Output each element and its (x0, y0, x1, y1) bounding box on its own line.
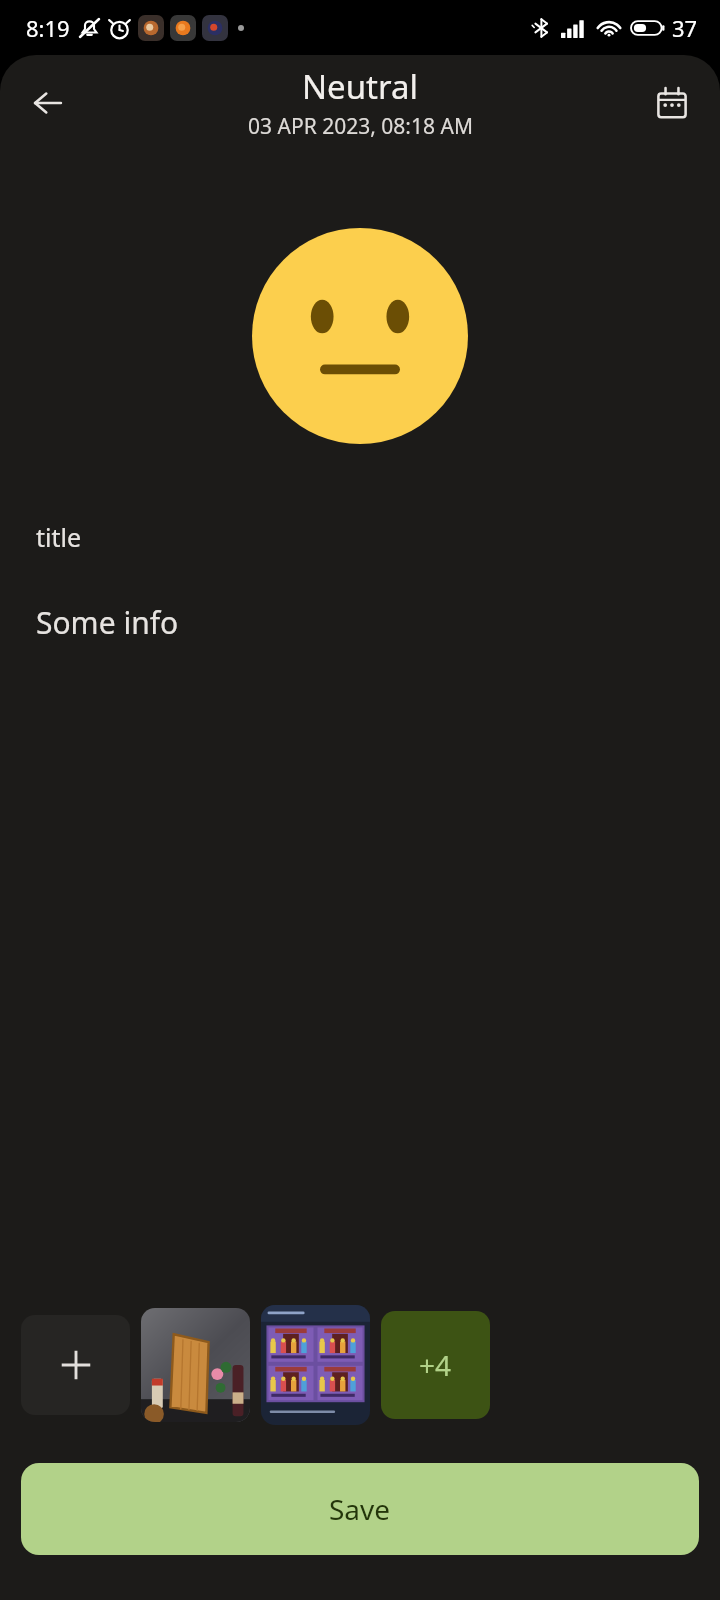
staticText: 03 APR 2023, 08:18 AM (248, 112, 473, 141)
staticText: 37 (672, 13, 698, 43)
button[interactable]: title (36, 520, 684, 554)
button[interactable]: Add image (21, 1315, 130, 1415)
button[interactable]: Attached photo (141, 1308, 250, 1422)
staticText: Save (329, 1490, 391, 1528)
button[interactable]: Some info (36, 602, 684, 643)
staticText: Some info (36, 602, 179, 643)
button[interactable]: Back (14, 69, 82, 137)
button[interactable]: Save (21, 1463, 699, 1555)
staticText: Neutral (302, 64, 418, 109)
button[interactable]: Attached screenshot (261, 1305, 370, 1425)
staticText: 8:19 (26, 13, 70, 43)
staticText: +4 (419, 1346, 452, 1384)
staticText: title (36, 520, 82, 554)
button[interactable]: Pick date (640, 71, 704, 135)
button[interactable]: +4 (381, 1311, 490, 1419)
